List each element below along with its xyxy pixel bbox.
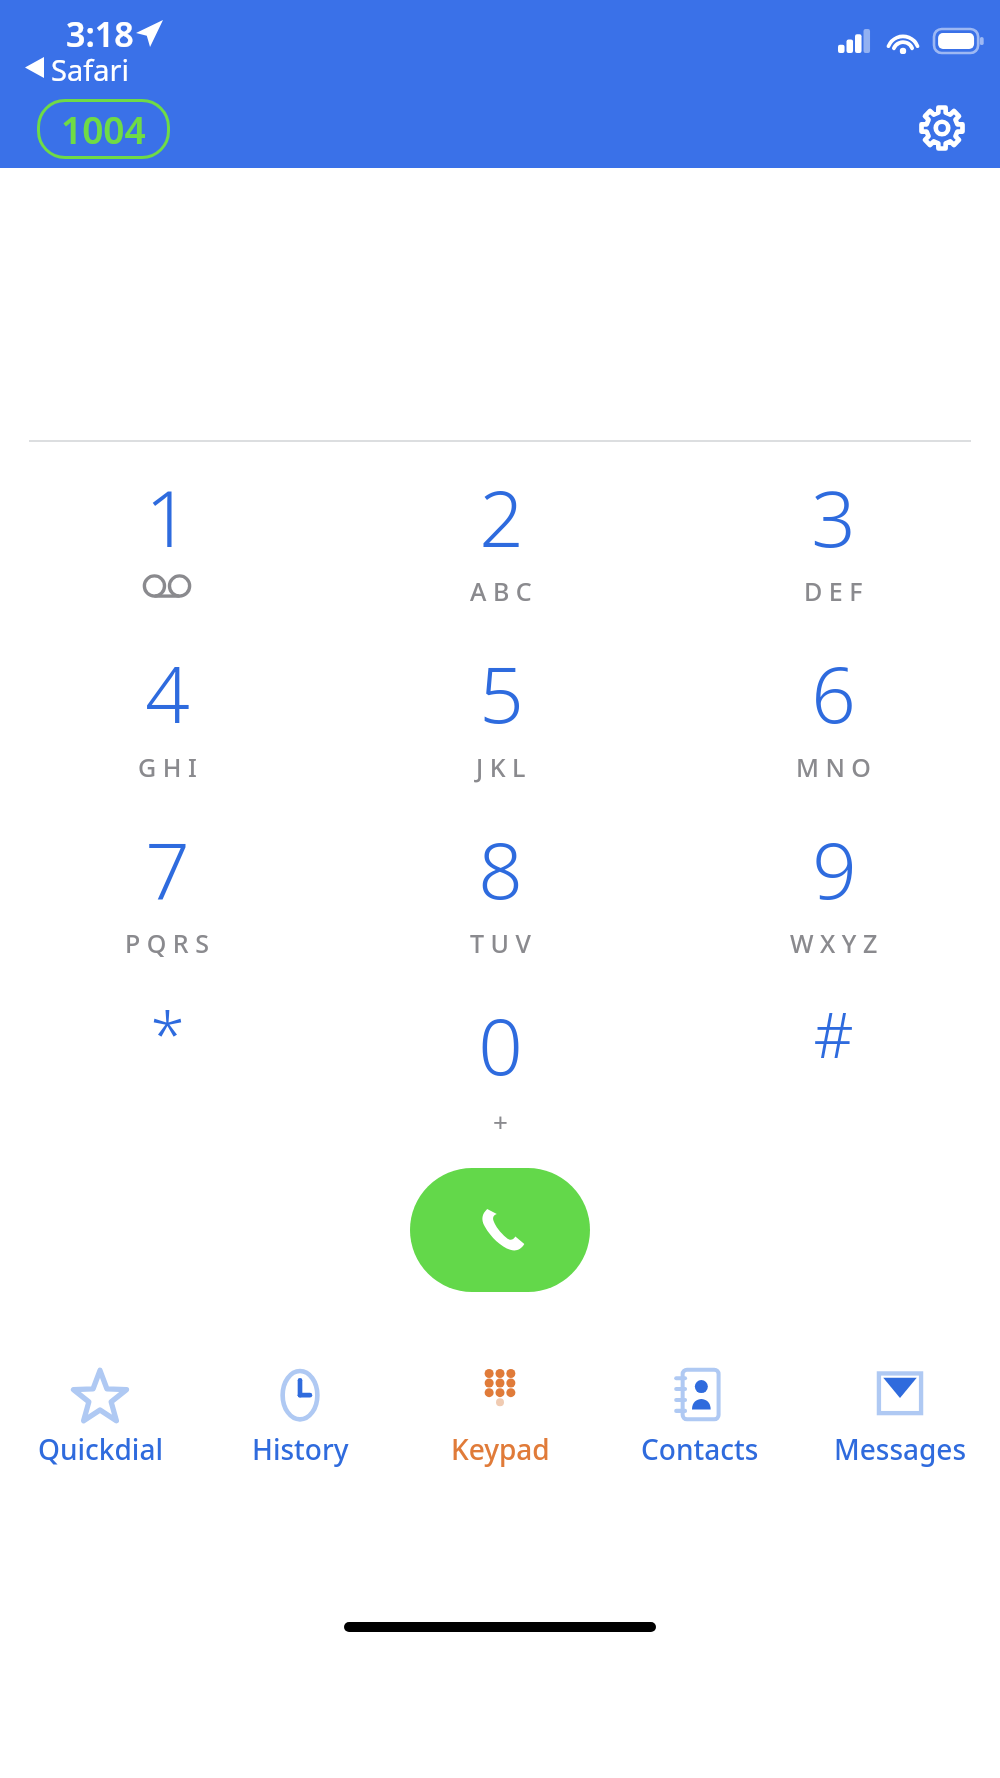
button[interactable]: 0 <box>334 992 667 1168</box>
button[interactable]: Messages <box>800 1360 1000 1476</box>
staticText: Safari <box>51 50 129 89</box>
staticText: 0 <box>478 992 523 1098</box>
button[interactable]: * <box>0 992 334 1168</box>
staticText: 5 <box>479 640 524 746</box>
button[interactable]: 9 <box>667 816 1000 992</box>
staticText: G H I <box>138 750 197 784</box>
button[interactable]: Settings <box>904 90 980 166</box>
staticText: * <box>150 992 185 1076</box>
staticText: P Q R S <box>125 926 209 960</box>
staticText: W X Y Z <box>790 926 878 960</box>
button[interactable]: 7 <box>0 816 334 992</box>
staticText: # <box>813 992 854 1076</box>
staticText: + <box>493 1104 508 1139</box>
staticText: 7 <box>145 816 190 922</box>
button[interactable]: 8 <box>334 816 667 992</box>
staticText: Contacts <box>641 1430 759 1468</box>
staticText: 9 <box>812 816 857 922</box>
button[interactable]: 2 <box>334 464 667 640</box>
staticText: 1 <box>145 464 190 570</box>
button[interactable]: 1 <box>0 464 334 640</box>
button[interactable]: Quickdial <box>0 1360 200 1476</box>
staticText: J K L <box>476 750 526 784</box>
staticText: A B C <box>470 574 532 608</box>
staticText: M N O <box>796 750 871 784</box>
staticText: 2 <box>479 464 524 570</box>
button[interactable]: 1004 <box>37 99 170 159</box>
button[interactable]: Call <box>410 1168 590 1292</box>
staticText: T U V <box>470 926 531 960</box>
staticText: 1004 <box>61 104 146 154</box>
button[interactable]: Keypad <box>400 1360 600 1476</box>
staticText: 6 <box>811 640 856 746</box>
button[interactable]: Contacts <box>600 1360 800 1476</box>
staticText: Quickdial <box>38 1430 163 1468</box>
button[interactable]: 3 <box>667 464 1000 640</box>
staticText: 3:18 <box>66 11 134 57</box>
staticText: History <box>252 1430 349 1468</box>
button[interactable]: History <box>200 1360 400 1476</box>
button[interactable]: # <box>667 992 1000 1168</box>
button[interactable]: 4 <box>0 640 334 816</box>
staticText: Messages <box>834 1430 967 1468</box>
staticText: 3 <box>811 464 856 570</box>
staticText: D E F <box>804 574 863 608</box>
button[interactable]: 6 <box>667 640 1000 816</box>
staticText: 8 <box>478 816 523 922</box>
button[interactable]: 5 <box>334 640 667 816</box>
staticText: 4 <box>145 640 190 746</box>
staticText: Keypad <box>451 1430 550 1468</box>
